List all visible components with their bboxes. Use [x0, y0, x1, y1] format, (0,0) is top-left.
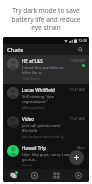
staticText: 11:47 AM: [69, 87, 85, 92]
staticText: 11:58 AM: [69, 58, 85, 63]
button[interactable]: Lucas Whitfield: [3, 84, 89, 113]
button[interactable]: Video: [3, 113, 89, 142]
button[interactable]: Status: [24, 169, 45, 182]
staticText: Management: [22, 105, 45, 110]
staticText: Cute Team: [22, 76, 40, 81]
staticText: HE at'L&S: [22, 58, 43, 64]
button[interactable]: New chat: [69, 150, 84, 165]
button[interactable]: Communities: [45, 169, 67, 182]
staticText: join.Jackson.admin.call.gobrat...: [22, 134, 67, 139]
staticText: Travel: [22, 163, 33, 166]
button[interactable]: Search: [76, 45, 85, 54]
staticText: Join call gobrat.com/85c3ufb: [22, 123, 67, 133]
button[interactable]: Chats: [3, 169, 24, 182]
staticText: 11:47 AM: [69, 116, 85, 121]
staticText: 12:30: [78, 38, 87, 43]
button[interactable]: HE at'L&S: [3, 55, 89, 84]
button[interactable]: Calls: [67, 169, 89, 182]
staticText: Video: [22, 116, 35, 122]
staticText: I send this portfolio to killer for u..: [22, 65, 67, 75]
staticText: Try dark mode to save battery life and r…: [11, 6, 81, 32]
staticText: Like: Hey guys, sorry I can't go out...: [22, 152, 75, 162]
staticText: Chats: [7, 46, 24, 54]
button[interactable]: Hawaii Trip: [3, 142, 89, 169]
staticText: Lucas Whitfield: [22, 87, 55, 93]
staticText: Mon: [77, 145, 85, 150]
staticText: Hawaii Trip: [22, 145, 46, 151]
staticText: Still viewing "ripe registrations": [22, 94, 67, 104]
